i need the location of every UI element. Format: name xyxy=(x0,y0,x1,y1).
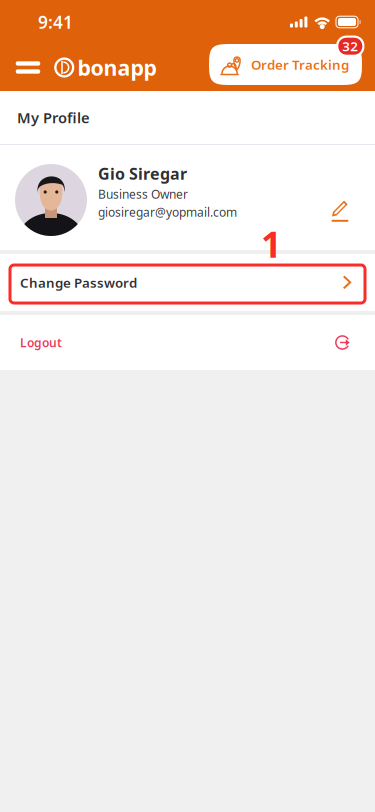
staticText: 1 xyxy=(261,220,282,268)
staticText: My Profile xyxy=(17,108,90,127)
button[interactable]: 32 new order updates xyxy=(336,35,364,57)
staticText: bonapp xyxy=(77,53,156,82)
button[interactable]: Edit profile xyxy=(321,188,359,234)
staticText: Change Password xyxy=(20,274,137,291)
staticText: Business Owner xyxy=(98,186,188,202)
staticText: 32 xyxy=(342,37,358,55)
button[interactable]: Change Password xyxy=(0,254,375,311)
button[interactable]: Logout xyxy=(0,315,375,370)
staticText: Gio Siregar xyxy=(98,163,187,184)
staticText: giosiregar@yopmail.com xyxy=(98,204,237,220)
button[interactable]: Order Tracking xyxy=(209,44,362,85)
button[interactable]: Open menu xyxy=(8,44,48,91)
staticText: Order Tracking xyxy=(251,56,349,73)
staticText: 9:41 xyxy=(38,10,73,33)
staticText: Logout xyxy=(20,334,62,350)
